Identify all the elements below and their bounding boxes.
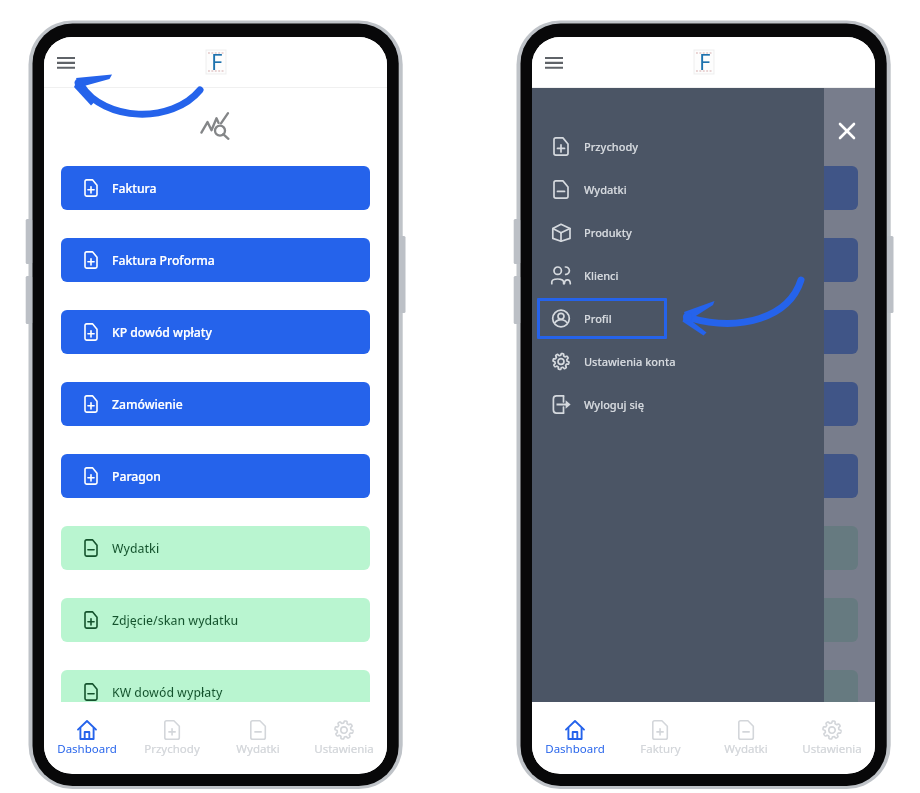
staticText: Faktura [112, 180, 157, 197]
button[interactable]: Faktury [617, 702, 703, 773]
button[interactable]: Faktura Proforma [61, 238, 370, 282]
button[interactable]: Zdjęcie/skan wydatku [61, 598, 370, 642]
button[interactable]: Wydatki [703, 702, 789, 773]
staticText: F [699, 46, 711, 70]
button[interactable]: KP dowód wpłaty [549, 310, 858, 354]
button[interactable]: Przychody [553, 125, 824, 168]
button[interactable]: Zdjęcie/skan wydatku [549, 598, 858, 642]
button[interactable]: Paragon [549, 454, 858, 498]
button[interactable]: Zamówienie [549, 382, 858, 426]
staticText: Wyloguj się [584, 397, 645, 412]
staticText: Faktura Proforma [112, 252, 215, 269]
button[interactable]: Wyloguj się [553, 383, 824, 426]
staticText: Wydatki [584, 182, 627, 197]
staticText: Wydatki [112, 540, 160, 557]
button[interactable]: Wydatki [61, 526, 370, 570]
button[interactable]: Faktura [549, 166, 858, 210]
button[interactable]: Ustawienia [789, 702, 875, 773]
button[interactable]: Close menu [832, 116, 862, 146]
button[interactable]: Przychody [129, 702, 215, 773]
staticText: Faktura [600, 180, 645, 197]
staticText: KW dowód wypłaty [112, 684, 223, 701]
staticText: Wydatki [724, 741, 768, 757]
button[interactable]: Open navigation menu [47, 43, 85, 81]
button[interactable]: Produkty [553, 211, 824, 254]
button[interactable]: Faktura [61, 166, 370, 210]
staticText: Zamówienie [112, 396, 183, 413]
staticText: Przychody [144, 741, 200, 757]
button[interactable]: Open navigation menu [535, 43, 573, 81]
staticText: Profil [584, 311, 612, 326]
button[interactable]: Klienci [553, 254, 824, 297]
button[interactable]: KW dowód wypłaty [61, 670, 370, 714]
button[interactable]: Wydatki [553, 168, 824, 211]
staticText: Wydatki [236, 741, 280, 757]
staticText: KP dowód wpłaty [112, 324, 212, 341]
staticText: Przychody [584, 139, 639, 154]
staticText: Paragon [112, 468, 161, 485]
staticText: Zdjęcie/skan wydatku [112, 612, 239, 629]
staticText: F [211, 46, 223, 70]
staticText: Faktury [640, 741, 681, 757]
staticText: Ustawienia [314, 741, 374, 757]
staticText: Zamówienie [600, 396, 671, 413]
staticText: Produkty [584, 225, 632, 240]
staticText: KP dowód wpłaty [600, 324, 700, 341]
button[interactable]: Dashboard [44, 702, 129, 773]
button[interactable]: Paragon [61, 454, 370, 498]
staticText: Dashboard [545, 741, 605, 757]
staticText: Klienci [584, 268, 619, 283]
button[interactable]: Ustawienia [301, 702, 387, 773]
button[interactable]: Zamówienie [61, 382, 370, 426]
button[interactable]: Ustawienia konta [553, 340, 824, 383]
button[interactable]: Wydatki [549, 526, 858, 570]
staticText: Ustawienia [802, 741, 862, 757]
button[interactable]: KP dowód wpłaty [61, 310, 370, 354]
button[interactable]: Dashboard [532, 702, 617, 773]
button[interactable]: Wydatki [215, 702, 301, 773]
staticText: Ustawienia konta [584, 354, 676, 369]
button[interactable]: Profil [553, 297, 824, 340]
button[interactable]: KW dowód wypłaty [549, 670, 858, 714]
button[interactable]: Faktura Proforma [549, 238, 858, 282]
staticText: Dashboard [57, 741, 117, 757]
